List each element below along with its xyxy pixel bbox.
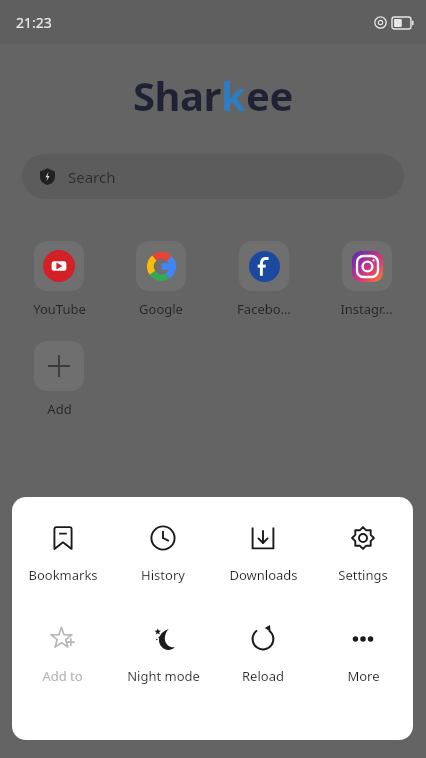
button[interactable]: Bookmarks (12, 519, 113, 588)
other: Settings (350, 525, 376, 551)
staticText: 21:23 (16, 13, 52, 32)
staticText: Downloads (229, 566, 298, 584)
staticText: Shar (133, 68, 221, 122)
button[interactable]: Google (110, 239, 212, 320)
button[interactable]: Night mode (113, 620, 213, 689)
staticText: Search (68, 167, 116, 187)
other: Night mode (150, 626, 176, 652)
button[interactable]: More (313, 620, 413, 689)
staticText: Night mode (127, 667, 200, 685)
button[interactable]: Settings (313, 519, 413, 588)
other: More (350, 626, 376, 652)
staticText: YouTube (33, 300, 86, 318)
other: History (150, 525, 176, 551)
button[interactable]: Add to (12, 620, 113, 689)
staticText: ee (246, 68, 293, 122)
button[interactable]: Instagr… (315, 239, 418, 320)
staticText: History (141, 566, 185, 584)
staticText: Add (47, 400, 72, 418)
staticText: Add to (42, 667, 83, 685)
other: Downloads (250, 525, 276, 551)
staticText: k (221, 68, 246, 122)
other: Reload (250, 626, 276, 652)
staticText: Bookmarks (28, 566, 98, 584)
button[interactable]: History (113, 519, 213, 588)
button[interactable]: Reload (213, 620, 313, 689)
staticText: Reload (242, 667, 284, 685)
staticText: Google (139, 300, 183, 318)
button[interactable]: Add (8, 339, 110, 420)
button[interactable]: Downloads (213, 519, 313, 588)
button[interactable]: Facebo… (212, 239, 315, 320)
button[interactable]: Search (22, 154, 404, 199)
other: Bookmarks (50, 525, 76, 551)
button[interactable]: YouTube (8, 239, 110, 320)
staticText: More (347, 667, 380, 685)
staticText: Instagr… (340, 300, 393, 318)
staticText: Facebo… (237, 300, 291, 318)
staticText: Settings (338, 566, 388, 584)
other: Add to (50, 626, 76, 652)
